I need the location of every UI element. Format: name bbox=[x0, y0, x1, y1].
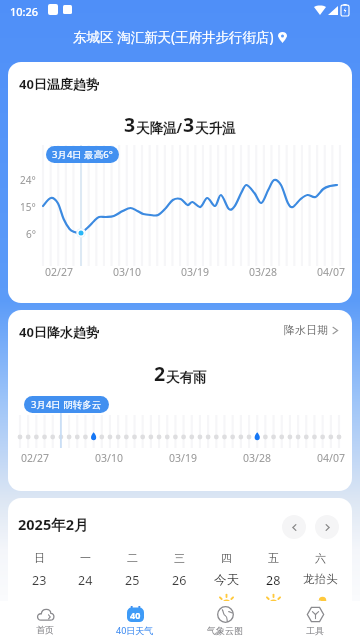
staticText: 天降温/ bbox=[136, 119, 183, 137]
staticText: 40日降水趋势 bbox=[19, 323, 99, 341]
button[interactable]: Next month bbox=[315, 515, 339, 539]
staticText: 3月4日 最高6° bbox=[52, 148, 113, 161]
staticText: 龙抬头 bbox=[303, 572, 338, 586]
staticText: 三 bbox=[174, 551, 185, 565]
staticText: 03/10 bbox=[95, 451, 123, 465]
staticText: 28 bbox=[266, 572, 281, 589]
staticText: 3 bbox=[124, 111, 136, 138]
button[interactable]: 24 bbox=[62, 572, 109, 589]
staticText: 03/28 bbox=[243, 451, 271, 465]
staticText: 24° bbox=[20, 173, 36, 187]
staticText: 04/07 bbox=[317, 265, 345, 279]
staticText: 一 bbox=[80, 551, 91, 565]
staticText: 26 bbox=[172, 572, 187, 589]
button[interactable]: 降水日期 bbox=[284, 323, 339, 337]
staticText: 02/27 bbox=[45, 265, 73, 279]
staticText: 天有雨 bbox=[166, 369, 207, 386]
staticText: 天升温 bbox=[195, 120, 236, 137]
staticText: 四 bbox=[221, 551, 232, 565]
staticText: 03/28 bbox=[249, 265, 277, 279]
staticText: 今天 bbox=[214, 572, 239, 588]
staticText: 气象云图 bbox=[207, 625, 243, 636]
button[interactable]: Previous month bbox=[282, 515, 306, 539]
staticText: 工具 bbox=[306, 625, 324, 636]
staticText: 03/19 bbox=[169, 451, 197, 465]
button[interactable]: 40 bbox=[90, 601, 180, 640]
button[interactable]: 气象云图 bbox=[180, 601, 270, 640]
staticText: 02/27 bbox=[21, 451, 49, 465]
staticText: 3月4日 阴转多云 bbox=[31, 398, 102, 411]
staticText: 40日天气 bbox=[116, 624, 154, 636]
staticText: 日 bbox=[34, 551, 45, 565]
staticText: 二 bbox=[127, 551, 138, 565]
staticText: 2025年2月 bbox=[18, 514, 89, 534]
staticText: 15° bbox=[20, 200, 36, 214]
staticText: 03/19 bbox=[181, 265, 209, 279]
staticText: 40 bbox=[130, 609, 141, 621]
staticText: 24 bbox=[78, 572, 93, 589]
button[interactable]: 工具 bbox=[270, 601, 360, 640]
staticText: 10:26 bbox=[10, 4, 39, 19]
staticText: 03/10 bbox=[113, 265, 141, 279]
button[interactable]: 东城区 淘汇新天(王府井步行街店) bbox=[73, 28, 287, 46]
button[interactable]: 首页 bbox=[0, 601, 90, 640]
button[interactable]: 龙抬头 bbox=[297, 572, 344, 586]
staticText: 五 bbox=[268, 551, 279, 565]
staticText: 东城区 淘汇新天(王府井步行街店) bbox=[73, 28, 274, 46]
staticText: 3 bbox=[183, 111, 195, 138]
staticText: 25 bbox=[125, 572, 140, 589]
button[interactable]: 25 bbox=[109, 572, 156, 589]
staticText: 04/07 bbox=[317, 451, 345, 465]
button[interactable]: 今天 bbox=[203, 572, 250, 588]
staticText: 40日温度趋势 bbox=[19, 75, 99, 93]
staticText: 降水日期 bbox=[284, 323, 328, 337]
staticText: 六 bbox=[315, 551, 326, 565]
button[interactable]: 23 bbox=[16, 572, 62, 589]
staticText: 6° bbox=[26, 227, 36, 241]
button[interactable]: 26 bbox=[156, 572, 203, 589]
staticText: 23 bbox=[32, 572, 47, 589]
staticText: 2 bbox=[154, 360, 166, 387]
button[interactable]: 28 bbox=[250, 572, 297, 589]
staticText: 首页 bbox=[36, 624, 54, 635]
